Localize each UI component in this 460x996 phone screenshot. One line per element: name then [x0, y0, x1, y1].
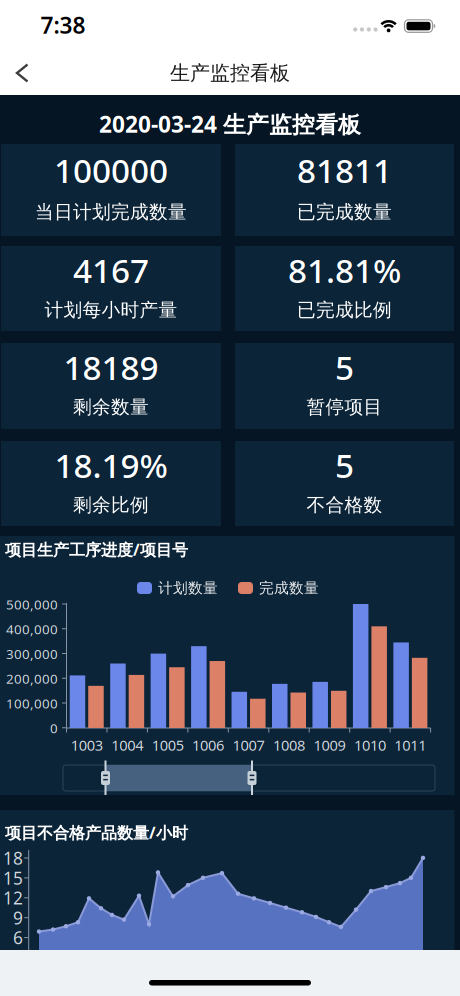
staticText: 项目生产工序进度/项目号	[5, 539, 188, 560]
button[interactable]: Zoom handle	[0, 0, 460, 996]
staticText: 剩余数量	[73, 395, 149, 418]
staticText: 81.81%	[288, 248, 401, 292]
staticText: 400,000	[6, 620, 58, 638]
staticText: 1005	[152, 735, 184, 755]
button[interactable]: Zoom handle	[0, 0, 460, 996]
staticText: 500,000	[6, 595, 58, 613]
button[interactable]: Zoom window	[0, 0, 146, 26]
staticText: 计划数量	[158, 579, 218, 597]
staticText: 5	[335, 443, 354, 487]
staticText: 1004	[111, 735, 143, 755]
staticText: 2020-03-24 生产监控看板	[99, 109, 361, 139]
staticText: 4167	[73, 248, 149, 292]
staticText: 5	[335, 345, 354, 389]
staticText: 1010	[354, 735, 386, 755]
staticText: 1006	[192, 735, 224, 755]
staticText: 9	[13, 906, 23, 929]
staticText: 暂停项目	[306, 395, 382, 418]
button[interactable]: 计划数量	[137, 579, 218, 597]
staticText: 81811	[297, 148, 392, 192]
staticText: 当日计划完成数量	[35, 200, 187, 223]
staticText: 项目不合格产品数量/小时	[5, 822, 188, 843]
staticText: 15	[3, 866, 23, 889]
staticText: 200,000	[6, 670, 58, 687]
staticText: 生产监控看板	[170, 61, 290, 85]
staticText: 6	[13, 926, 23, 949]
staticText: 1009	[313, 735, 345, 755]
staticText: 1003	[71, 735, 103, 755]
staticText: 剩余比例	[73, 493, 149, 516]
staticText: 不合格数	[306, 493, 382, 516]
staticText: 7:38	[40, 10, 85, 40]
staticText: 100000	[54, 148, 168, 192]
staticText: 100,000	[6, 694, 58, 712]
staticText: 12	[3, 886, 23, 909]
staticText: 1007	[233, 735, 265, 755]
staticText: 18.19%	[54, 443, 167, 487]
staticText: 已完成数量	[297, 200, 392, 223]
staticText: 计划每小时产量	[44, 298, 177, 321]
button[interactable]: 完成数量	[238, 579, 319, 597]
staticText: 18189	[63, 345, 158, 389]
staticText: 1011	[394, 735, 426, 755]
staticText: 1008	[273, 735, 305, 755]
staticText: 18	[3, 846, 23, 869]
button[interactable]: Back	[0, 0, 44, 44]
staticText: 完成数量	[259, 579, 319, 597]
staticText: 已完成比例	[297, 298, 392, 321]
staticText: 0	[50, 719, 58, 737]
staticText: 300,000	[6, 645, 58, 663]
